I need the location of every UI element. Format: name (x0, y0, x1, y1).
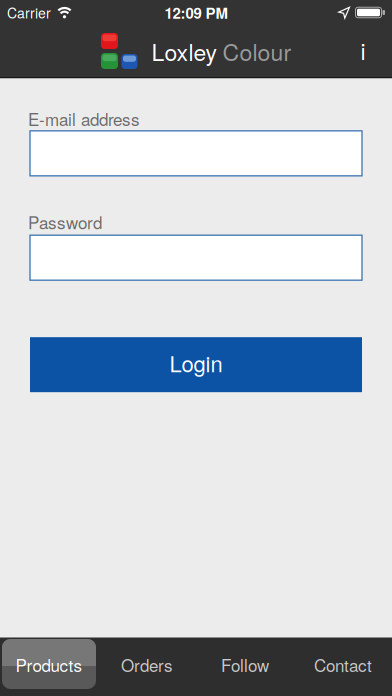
button[interactable]: Contact (294, 637, 392, 696)
button[interactable]: Login (30, 337, 362, 392)
button[interactable]: i (348, 29, 378, 73)
button[interactable]: Follow (196, 637, 294, 696)
staticText: Orders (121, 653, 173, 677)
button[interactable]: Orders (98, 637, 196, 696)
button[interactable]: Products (0, 637, 98, 696)
staticText: Carrier (7, 2, 51, 22)
button[interactable] (30, 235, 362, 280)
staticText: Login (169, 347, 222, 378)
staticText: E-mail address (28, 106, 140, 131)
staticText: Products (15, 653, 82, 677)
staticText: i (360, 33, 365, 66)
staticText: 12:09 PM (164, 2, 227, 23)
staticText: Contact (314, 653, 372, 677)
staticText: Password (28, 210, 102, 234)
staticText: Colour (222, 34, 291, 67)
staticText: Follow (221, 653, 269, 677)
button[interactable] (30, 131, 362, 176)
staticText: Loxley (151, 34, 217, 67)
